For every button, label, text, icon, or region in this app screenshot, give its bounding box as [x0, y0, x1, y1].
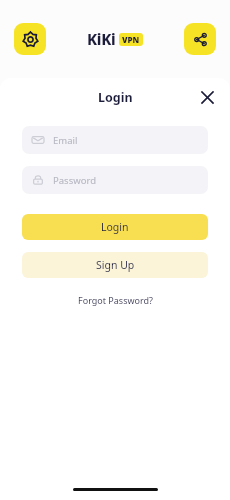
button[interactable]: Close [196, 86, 218, 108]
staticText: Email [53, 134, 78, 147]
staticText: Login [101, 220, 129, 234]
staticText: VPN [122, 34, 140, 45]
staticText: Login [98, 89, 133, 106]
staticText: Forgot Password? [78, 294, 153, 306]
button[interactable]: Password [22, 166, 208, 194]
button[interactable]: Forgot Password? [72, 291, 159, 309]
button[interactable]: Email [22, 126, 208, 154]
staticText: Password [53, 174, 96, 187]
staticText: Sign Up [96, 258, 135, 272]
button[interactable]: Sign Up [22, 252, 208, 278]
button[interactable]: Share [184, 23, 216, 55]
staticText: KiKi [87, 29, 116, 49]
button[interactable]: Settings [14, 23, 46, 55]
button[interactable]: Login [22, 214, 208, 240]
